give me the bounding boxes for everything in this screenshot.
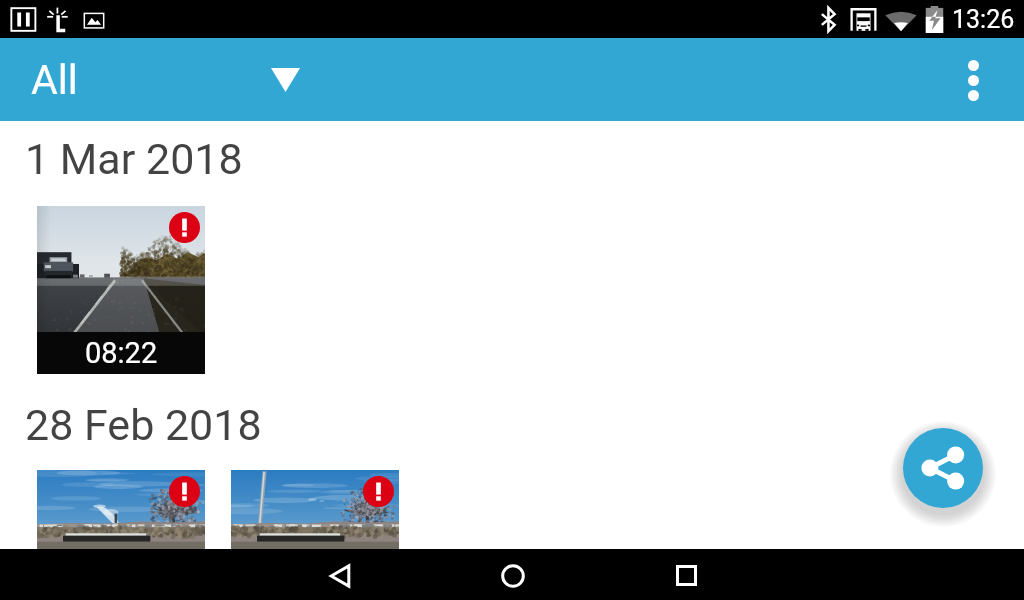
staticText: 13:26 bbox=[952, 5, 1015, 34]
staticText: 08:22 bbox=[85, 336, 158, 370]
button[interactable]: More options bbox=[941, 48, 1005, 112]
staticText: 1 Mar 2018 bbox=[25, 134, 243, 180]
button[interactable]: Home bbox=[481, 550, 545, 600]
button[interactable]: Recent apps bbox=[654, 550, 718, 600]
button[interactable]: Recording 08:22 bbox=[37, 206, 205, 374]
button[interactable]: Recording 09:48 bbox=[231, 470, 399, 600]
staticText: 28 Feb 2018 bbox=[25, 400, 262, 446]
button[interactable]: Share bbox=[903, 428, 983, 508]
button[interactable]: Back bbox=[308, 550, 372, 600]
staticText: All bbox=[31, 56, 78, 104]
button[interactable]: Recording 09:14 bbox=[37, 470, 205, 600]
button[interactable]: All bbox=[0, 38, 338, 121]
